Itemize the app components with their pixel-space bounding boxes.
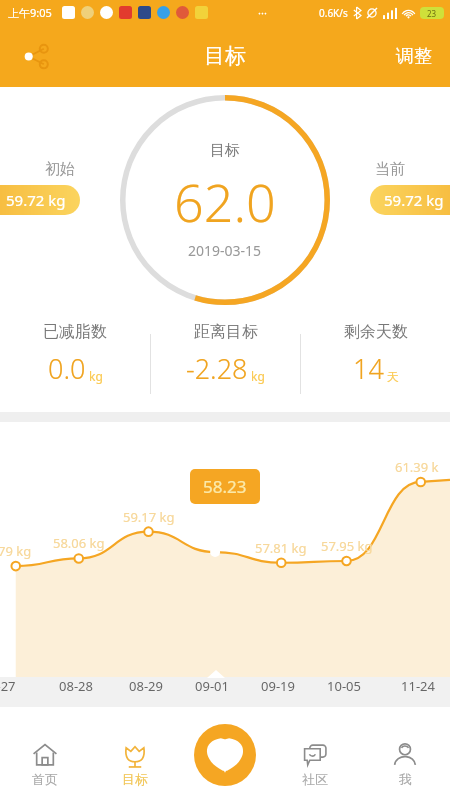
staticText: 社区 xyxy=(302,771,328,787)
button[interactable]: 调整 xyxy=(386,35,442,78)
button[interactable]: 58.23 xyxy=(190,469,260,504)
staticText: 0.6K/s xyxy=(319,6,348,20)
staticText: 距离目标 xyxy=(194,322,258,342)
staticText: 当前 xyxy=(375,160,405,179)
staticText: 10-05 xyxy=(327,677,361,695)
staticText: 08-28 xyxy=(59,677,93,695)
staticText: 61.39 k xyxy=(395,458,439,476)
staticText: 58.23 xyxy=(203,475,247,498)
staticText: 08-29 xyxy=(129,677,163,695)
staticText: 目标 xyxy=(204,43,246,69)
staticText: 14 xyxy=(353,350,384,387)
staticText: 初始 xyxy=(45,160,75,179)
staticText: 59.17 kg xyxy=(123,508,175,526)
button[interactable]: Add record xyxy=(194,724,256,786)
button[interactable]: 目标 xyxy=(90,729,180,800)
staticText: 79 kg xyxy=(0,542,32,560)
staticText: 我 xyxy=(399,771,412,787)
button[interactable]: 距离目标 xyxy=(151,322,300,387)
staticText: 09-19 xyxy=(261,677,295,695)
staticText: 2019-03-15 xyxy=(188,241,262,260)
staticText: -2.28 xyxy=(186,350,248,387)
button[interactable]: Share xyxy=(14,34,58,78)
staticText: 09-01 xyxy=(195,677,229,695)
button[interactable]: 59.72 kg xyxy=(370,185,450,215)
staticText: 23 xyxy=(427,8,437,19)
staticText: 剩余天数 xyxy=(344,322,408,342)
staticText: kg xyxy=(251,368,265,384)
staticText: 59.72 kg xyxy=(6,190,66,210)
staticText: 57.81 kg xyxy=(255,539,307,557)
staticText: ··· xyxy=(258,5,267,20)
staticText: 58.06 kg xyxy=(53,534,105,552)
staticText: 57.95 kg xyxy=(321,537,373,555)
button[interactable]: 首页 xyxy=(0,729,90,800)
staticText: 上午9:05 xyxy=(8,5,52,20)
staticText: 0.0 xyxy=(48,350,86,387)
staticText: -27 xyxy=(0,677,16,695)
staticText: 目标 xyxy=(122,771,148,787)
button[interactable]: 我 xyxy=(360,729,450,800)
staticText: kg xyxy=(89,368,103,384)
button[interactable]: 社区 xyxy=(270,729,360,800)
staticText: 首页 xyxy=(32,771,58,787)
staticText: 11-24 xyxy=(401,677,435,695)
staticText: 62.0 xyxy=(174,166,276,237)
button[interactable]: 59.72 kg xyxy=(0,185,80,215)
staticText: 59.72 kg xyxy=(384,190,444,210)
staticText: 天 xyxy=(387,369,399,384)
button[interactable]: 剩余天数 xyxy=(301,322,450,387)
staticText: 调整 xyxy=(396,45,432,68)
button[interactable]: 已减脂数 xyxy=(0,322,150,387)
staticText: 已减脂数 xyxy=(43,322,107,342)
staticText: 目标 xyxy=(210,141,240,160)
